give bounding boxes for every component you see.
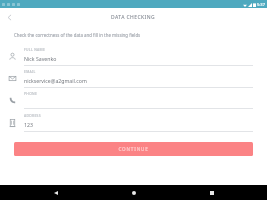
- other: ADDRESS: [8, 118, 17, 127]
- button[interactable]: ADDRESS: [0, 111, 267, 133]
- button[interactable]: Back: [51, 188, 61, 198]
- staticText: 123: [24, 121, 33, 128]
- staticText: ADDRESS: [24, 113, 41, 118]
- staticText: Check the correctness of the data and fi…: [14, 32, 141, 38]
- staticText: Nick Savenko: [24, 55, 57, 62]
- button[interactable]: Home: [129, 188, 139, 198]
- staticText: EMAIL: [24, 69, 36, 74]
- button[interactable]: EMAIL: [0, 67, 267, 89]
- button[interactable]: Recents: [207, 188, 217, 198]
- button[interactable]: Back: [0, 8, 18, 26]
- staticText: nickservice@a2gmail.com: [24, 77, 87, 84]
- staticText: PHONE: [24, 91, 38, 96]
- other: PHONE: [8, 96, 17, 105]
- other: EMAIL: [8, 74, 17, 83]
- button[interactable]: PHONE: [0, 89, 267, 111]
- staticText: CONTINUE: [118, 146, 149, 152]
- button[interactable]: FULL NAME: [0, 45, 267, 67]
- staticText: FULL NAME: [24, 47, 46, 52]
- staticText: DATA CHECKING: [111, 14, 156, 21]
- staticText: 5:37: [257, 2, 265, 7]
- other: FULL NAME: [8, 52, 17, 61]
- button[interactable]: CONTINUE: [14, 142, 253, 156]
